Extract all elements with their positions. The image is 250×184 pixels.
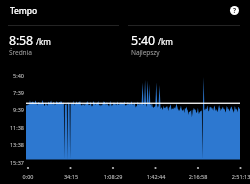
staticText: Najlepszy [131,48,160,57]
staticText: ? [233,6,237,15]
button[interactable]: Help [228,4,241,17]
staticText: 0:00 [8,173,48,180]
staticText: 7:39 [0,89,24,96]
staticText: 9:39 [0,106,24,113]
staticText: 5:40 [0,72,24,79]
staticText: /km [158,36,173,47]
staticText: Tempo [10,5,38,17]
staticText: 13:38 [0,141,24,148]
staticText: 1:08:29 [93,173,133,180]
staticText: 5:40 [131,32,155,49]
button[interactable]: 5:40 [131,32,231,56]
button[interactable]: Tempo [10,5,38,17]
staticText: /km [36,36,51,47]
staticText: 8:58 [9,32,33,49]
staticText: 15:37 [0,159,24,166]
staticText: 2:16:58 [178,173,218,180]
staticText: Średnia [9,48,32,57]
staticText: 11:38 [0,124,24,131]
staticText: 1:42:44 [136,173,176,180]
staticText: 34:15 [51,173,91,180]
staticText: 2:51:13 [221,173,250,180]
button[interactable]: 8:58 [9,32,109,56]
